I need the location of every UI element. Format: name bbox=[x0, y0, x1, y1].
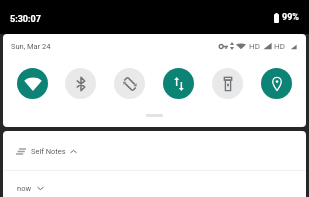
button[interactable]: now bbox=[3, 171, 306, 197]
button[interactable]: Mobile data bbox=[163, 68, 194, 99]
button[interactable]: Self Notes bbox=[3, 131, 306, 169]
staticText: Sun, Mar 24 bbox=[11, 42, 51, 51]
staticText: now bbox=[17, 184, 32, 193]
staticText: 99% bbox=[282, 12, 299, 23]
staticText: HD bbox=[274, 42, 285, 51]
button[interactable]: Bluetooth bbox=[65, 68, 96, 99]
staticText: HD bbox=[249, 42, 260, 51]
staticText: 5:30:07 bbox=[10, 14, 41, 25]
button[interactable]: Flashlight bbox=[212, 68, 243, 99]
button[interactable]: Wi-Fi bbox=[17, 68, 48, 99]
button[interactable]: Location bbox=[261, 68, 292, 99]
button[interactable]: Auto rotate bbox=[114, 68, 145, 99]
staticText: Self Notes bbox=[31, 147, 66, 156]
